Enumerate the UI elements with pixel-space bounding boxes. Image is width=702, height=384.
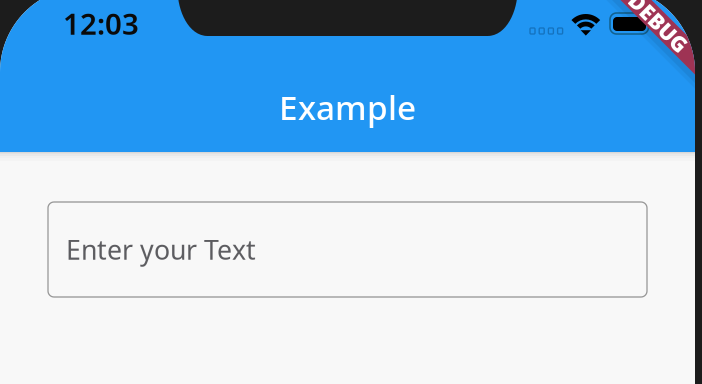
staticText: 12:03 (63, 4, 139, 43)
staticText: Example (279, 85, 416, 129)
staticText: DEBUG (623, 5, 697, 33)
button[interactable]: Enter your Text (48, 202, 647, 297)
staticText: Enter your Text (66, 232, 256, 267)
